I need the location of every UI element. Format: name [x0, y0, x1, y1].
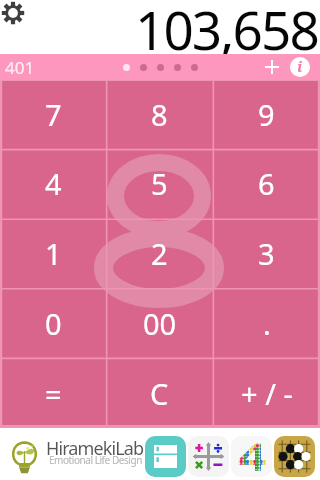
- staticText: 2: [151, 234, 168, 273]
- button[interactable]: Go app: [274, 436, 315, 477]
- button[interactable]: 4: [0, 149, 106, 218]
- staticText: =: [45, 374, 62, 413]
- button[interactable]: 6: [213, 149, 320, 218]
- staticText: 8: [151, 95, 168, 134]
- button[interactable]: 8: [106, 80, 213, 149]
- staticText: 9: [258, 95, 275, 134]
- button[interactable]: Number puzzle app: [231, 436, 272, 477]
- button[interactable]: + / -: [213, 358, 320, 428]
- button[interactable]: 5: [106, 149, 213, 218]
- staticText: 103,658: [135, 0, 318, 65]
- button[interactable]: Settings: [3, 3, 23, 23]
- staticText: 401: [5, 56, 35, 79]
- staticText: 0: [45, 304, 62, 343]
- staticText: 3: [258, 234, 275, 273]
- button[interactable]: 0: [0, 288, 106, 358]
- button[interactable]: 7: [0, 80, 106, 149]
- staticText: 4: [45, 164, 62, 203]
- staticText: Emotional Life Design: [49, 453, 142, 467]
- staticText: 1: [45, 234, 62, 273]
- staticText: 00: [143, 304, 177, 343]
- button[interactable]: C: [106, 358, 213, 428]
- button[interactable]: 3: [213, 218, 320, 288]
- staticText: HiramekiLab: [46, 436, 144, 461]
- button[interactable]: 00: [106, 288, 213, 358]
- staticText: C: [150, 374, 169, 413]
- button[interactable]: 9: [213, 80, 320, 149]
- staticText: .: [263, 304, 271, 343]
- staticText: i: [297, 57, 303, 76]
- button[interactable]: .: [213, 288, 320, 358]
- staticText: 6: [258, 164, 275, 203]
- button[interactable]: Fridge app: [145, 436, 186, 477]
- staticText: 5: [151, 164, 168, 203]
- button[interactable]: 1: [0, 218, 106, 288]
- button[interactable]: =: [0, 358, 106, 428]
- button[interactable]: Info: [290, 57, 310, 77]
- button[interactable]: 2: [106, 218, 213, 288]
- button[interactable]: Add memory: [259, 54, 285, 80]
- staticText: 7: [45, 95, 62, 134]
- staticText: + / -: [241, 374, 293, 413]
- button[interactable]: Calculator app: [188, 436, 229, 477]
